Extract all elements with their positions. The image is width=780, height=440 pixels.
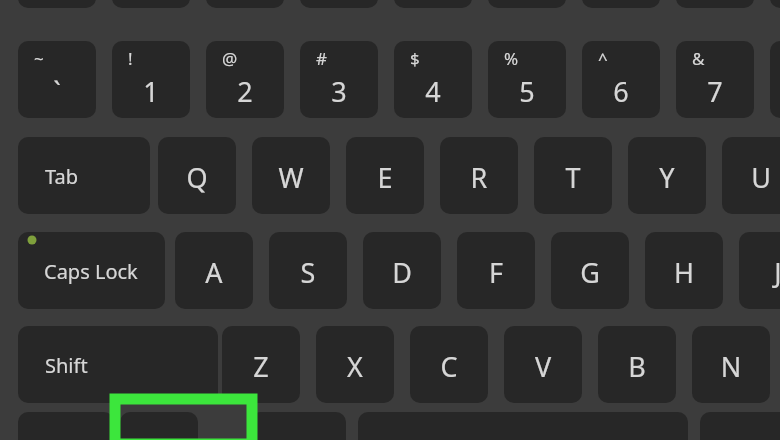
button[interactable]: X key bbox=[316, 326, 394, 403]
staticText: ~ bbox=[34, 47, 44, 70]
staticText: J bbox=[739, 254, 780, 309]
button[interactable]: R key bbox=[440, 137, 518, 214]
button[interactable]: Function key bbox=[18, 0, 96, 8]
button[interactable]: S key bbox=[269, 232, 347, 309]
staticText: 3 bbox=[300, 73, 378, 118]
button[interactable]: Function key bbox=[676, 0, 754, 8]
button[interactable]: Windows key bbox=[120, 412, 198, 440]
staticText: T bbox=[534, 159, 612, 214]
button[interactable]: D key bbox=[363, 232, 441, 309]
button[interactable]: Q key bbox=[158, 137, 236, 214]
staticText: Q bbox=[158, 159, 236, 214]
button[interactable]: Tab key bbox=[18, 137, 150, 214]
staticText: G bbox=[551, 254, 629, 309]
staticText: $ bbox=[410, 47, 420, 70]
staticText: Tab bbox=[45, 163, 79, 190]
button[interactable]: U key bbox=[722, 137, 780, 214]
staticText: D bbox=[363, 254, 441, 309]
button[interactable]: Function key bbox=[582, 0, 660, 8]
button[interactable]: % 5 key bbox=[488, 41, 566, 118]
staticText: W bbox=[252, 159, 330, 214]
staticText: ! bbox=[128, 47, 133, 70]
staticText: R bbox=[440, 159, 518, 214]
staticText: ^ bbox=[598, 47, 608, 70]
staticText: Shift bbox=[45, 352, 88, 379]
staticText: A bbox=[175, 254, 253, 309]
staticText: & bbox=[692, 47, 705, 70]
button[interactable]: # 3 key bbox=[300, 41, 378, 118]
button[interactable]: G key bbox=[551, 232, 629, 309]
staticText: B bbox=[598, 348, 676, 403]
button[interactable]: Function key bbox=[770, 0, 780, 8]
button[interactable]: ~ ` key bbox=[18, 41, 96, 118]
staticText: Z bbox=[222, 348, 300, 403]
button[interactable]: C key bbox=[410, 326, 488, 403]
button[interactable]: Control key bbox=[18, 412, 114, 440]
staticText: 5 bbox=[488, 73, 566, 118]
button[interactable]: * 8 key bbox=[770, 41, 780, 118]
button[interactable]: E key bbox=[346, 137, 424, 214]
button[interactable]: Highlighted key bbox=[115, 399, 252, 440]
staticText: 2 bbox=[206, 73, 284, 118]
staticText: % bbox=[504, 47, 519, 70]
button[interactable]: Function key bbox=[300, 0, 378, 8]
button[interactable]: W key bbox=[252, 137, 330, 214]
button[interactable]: Function key bbox=[394, 0, 472, 8]
button[interactable]: ^ 6 key bbox=[582, 41, 660, 118]
button[interactable]: J key bbox=[739, 232, 780, 309]
staticText: ` bbox=[18, 73, 96, 118]
staticText: 4 bbox=[394, 73, 472, 118]
staticText: # bbox=[316, 47, 327, 70]
button[interactable]: F key bbox=[457, 232, 535, 309]
staticText: C bbox=[410, 348, 488, 403]
staticText: 7 bbox=[676, 73, 754, 118]
staticText: Caps Lock bbox=[44, 258, 138, 285]
button[interactable]: A key bbox=[175, 232, 253, 309]
button[interactable]: Y key bbox=[628, 137, 706, 214]
staticText: S bbox=[269, 254, 347, 309]
button[interactable]: B key bbox=[598, 326, 676, 403]
button[interactable]: & 7 key bbox=[676, 41, 754, 118]
button[interactable]: ! 1 key bbox=[112, 41, 190, 118]
staticText: 6 bbox=[582, 73, 660, 118]
button[interactable]: Function key bbox=[206, 0, 284, 8]
button[interactable]: H key bbox=[645, 232, 723, 309]
button[interactable]: V key bbox=[504, 326, 582, 403]
button[interactable]: $ 4 key bbox=[394, 41, 472, 118]
button[interactable]: Function key bbox=[488, 0, 566, 8]
button[interactable]: T key bbox=[534, 137, 612, 214]
staticText: 8 bbox=[770, 73, 780, 118]
button[interactable]: Alt key bbox=[250, 412, 346, 440]
button[interactable]: Z key bbox=[222, 326, 300, 403]
staticText: Y bbox=[628, 159, 706, 214]
button[interactable]: Shift key bbox=[18, 326, 218, 403]
button[interactable]: Function key bbox=[112, 0, 190, 8]
button[interactable]: Caps Lock key bbox=[18, 232, 165, 309]
staticText: X bbox=[316, 348, 394, 403]
staticText: @ bbox=[222, 47, 238, 70]
staticText: H bbox=[645, 254, 723, 309]
staticText: V bbox=[504, 348, 582, 403]
button[interactable]: N key bbox=[692, 326, 770, 403]
staticText: 1 bbox=[112, 73, 190, 118]
staticText: E bbox=[346, 159, 424, 214]
staticText: U bbox=[722, 159, 780, 214]
staticText: F bbox=[457, 254, 535, 309]
button[interactable]: @ 2 key bbox=[206, 41, 284, 118]
staticText: N bbox=[692, 348, 770, 403]
